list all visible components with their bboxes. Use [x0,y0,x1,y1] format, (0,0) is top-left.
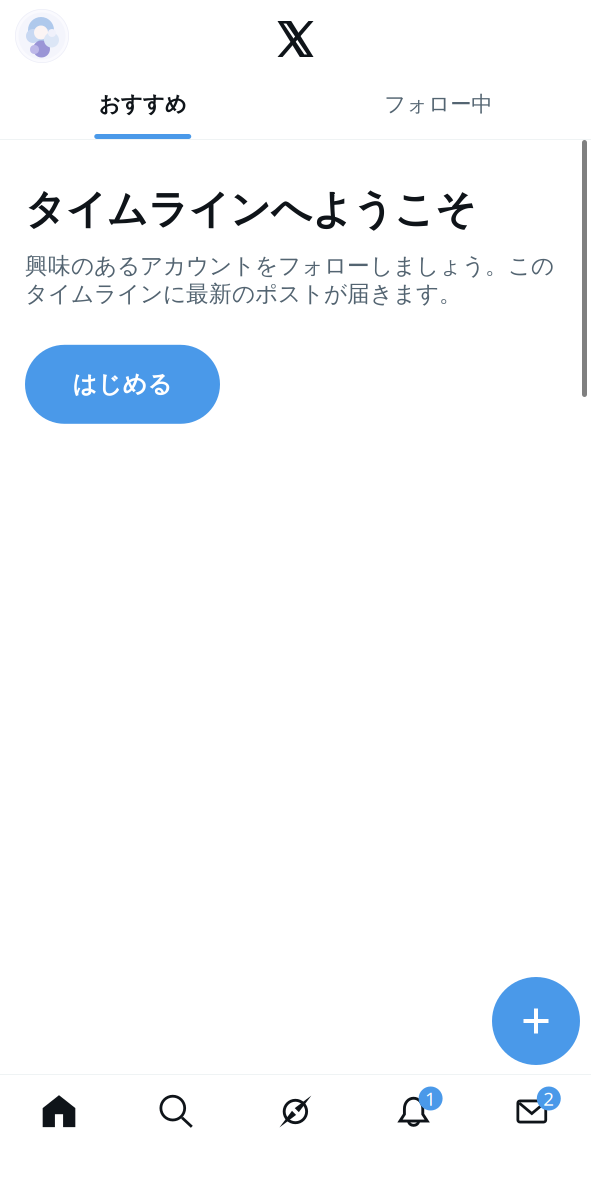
staticText: 興味のあるアカウントをフォローしましょう。このタイムラインに最新のポストが届きま… [25,252,554,308]
button[interactable]: Home [0,1074,118,1200]
staticText: はじめる [72,370,172,399]
staticText: タイムラインへようこそ [25,185,476,234]
button[interactable]: おすすめ [0,72,295,139]
staticText: 2 [543,1086,554,1111]
button[interactable]: Grok [236,1074,355,1200]
button[interactable]: Compose post [492,977,580,1065]
button[interactable]: Notifications [355,1074,473,1200]
staticText: 1 [425,1086,436,1111]
button[interactable]: はじめる [25,345,220,424]
button[interactable]: フォロー中 [295,72,591,139]
button[interactable]: Messages [473,1074,591,1200]
staticText: フォロー中 [384,91,492,117]
staticText: おすすめ [99,91,187,117]
button[interactable]: Search [118,1074,236,1200]
button[interactable]: Profile [0,1,69,71]
